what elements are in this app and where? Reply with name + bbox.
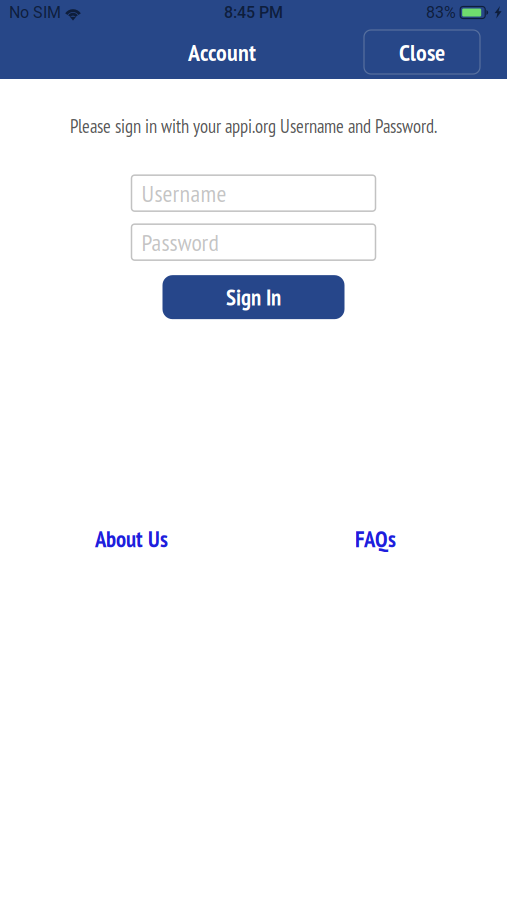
staticText: Close [399,36,445,68]
staticText: 8:45 PM [224,3,283,22]
button[interactable]: FAQs [343,516,408,561]
staticText: Account [188,36,256,68]
staticText: Password [141,227,218,258]
staticText: FAQs [355,524,396,553]
button[interactable]: About Us [83,516,180,561]
staticText: Sign In [226,282,281,312]
button[interactable]: Username [131,175,375,211]
staticText: Username [141,178,226,209]
button[interactable]: Password [131,224,375,260]
staticText: 83% [426,3,456,22]
button[interactable]: Sign In [162,275,344,319]
button[interactable]: Close [364,30,480,74]
staticText: Please sign in with your appi.org Userna… [70,114,437,138]
staticText: About Us [95,524,168,553]
staticText: No SIM [9,3,61,22]
